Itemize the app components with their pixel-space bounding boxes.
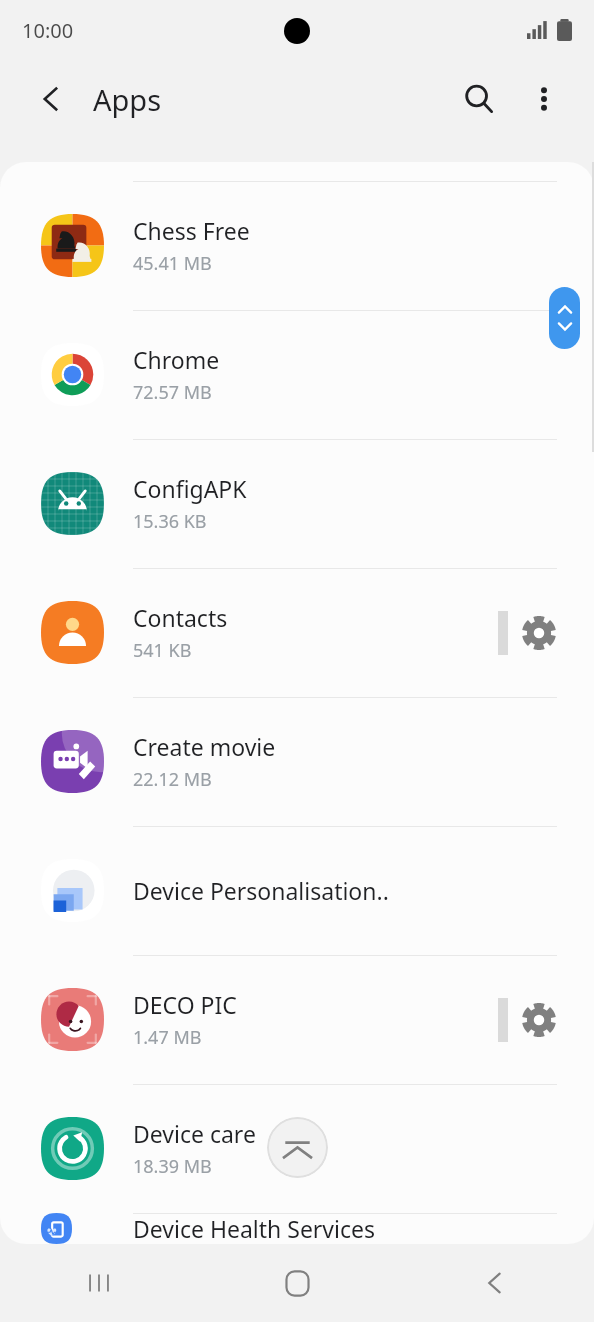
button[interactable]: DECO PIC	[0, 955, 594, 1084]
staticText: Create movie	[133, 731, 276, 762]
staticText: Device care	[133, 1118, 256, 1149]
staticText: 72.57 MB	[133, 380, 212, 405]
button[interactable]: Device Health Services	[0, 1213, 594, 1244]
staticText: ConfigAPK	[133, 473, 247, 504]
button[interactable]: Device Personalisation..	[0, 826, 594, 955]
staticText: Chrome	[133, 344, 220, 375]
staticText: Device Personalisation..	[133, 875, 389, 906]
staticText: Device Health Services	[133, 1213, 376, 1244]
button[interactable]: Fast scroll	[549, 287, 580, 349]
button[interactable]: ConfigAPK	[0, 439, 594, 568]
button[interactable]: App settings	[508, 602, 570, 664]
button[interactable]: Device care	[0, 1084, 594, 1213]
button[interactable]: Home	[198, 1244, 396, 1322]
button[interactable]: App settings	[508, 989, 570, 1051]
staticText: 15.36 KB	[133, 509, 207, 534]
staticText: 1.47 MB	[133, 1025, 202, 1050]
staticText: 541 KB	[133, 638, 192, 663]
button[interactable]: Contacts	[0, 568, 594, 697]
button[interactable]: Back	[396, 1244, 594, 1322]
staticText: Apps	[93, 80, 162, 119]
staticText: 45.41 MB	[133, 251, 212, 276]
button[interactable]: Chess Free	[0, 181, 594, 310]
button[interactable]: More options	[516, 71, 572, 127]
staticText: 10:00	[22, 17, 74, 44]
button[interactable]: Back	[26, 74, 76, 124]
button[interactable]: Chrome	[0, 310, 594, 439]
staticText: 22.12 MB	[133, 767, 212, 792]
button[interactable]: Search	[451, 71, 507, 127]
staticText: 18.39 MB	[133, 1154, 212, 1179]
staticText: DECO PIC	[133, 989, 237, 1020]
button[interactable]: Create movie	[0, 697, 594, 826]
staticText: Chess Free	[133, 215, 250, 246]
button[interactable]: Scroll to top	[267, 1117, 328, 1178]
button[interactable]: Recents	[0, 1244, 198, 1322]
staticText: Contacts	[133, 602, 228, 633]
